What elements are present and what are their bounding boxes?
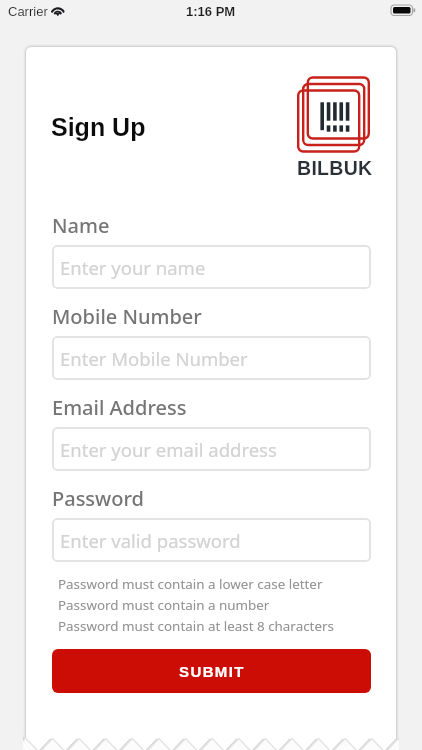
staticText: Password must contain at least 8 charact… bbox=[58, 617, 334, 635]
staticText: Name bbox=[52, 212, 110, 239]
staticText: Password bbox=[52, 485, 144, 512]
staticText: Mobile Number bbox=[52, 303, 202, 330]
button[interactable]: SUBMIT bbox=[52, 649, 371, 693]
staticText: Enter valid password bbox=[60, 528, 241, 553]
staticText: Email Address bbox=[52, 394, 187, 421]
staticText: BILBUK bbox=[297, 157, 373, 179]
staticText: SUBMIT bbox=[179, 663, 245, 680]
other: BILBUK logo bbox=[298, 77, 374, 155]
other: Battery full bbox=[391, 5, 416, 16]
staticText: 1:16 PM bbox=[186, 4, 236, 19]
staticText: Enter your email address bbox=[60, 437, 277, 462]
other: Wi-Fi bbox=[50, 3, 67, 17]
staticText: Carrier bbox=[8, 4, 48, 19]
staticText: Password must contain a number bbox=[58, 596, 270, 614]
staticText: Enter Mobile Number bbox=[60, 346, 248, 371]
button[interactable]: Enter your name bbox=[52, 245, 371, 289]
staticText: Password must contain a lower case lette… bbox=[58, 575, 323, 593]
staticText: Enter your name bbox=[60, 255, 206, 280]
button[interactable]: Enter your email address bbox=[52, 427, 371, 471]
button[interactable]: Enter Mobile Number bbox=[52, 336, 371, 380]
staticText: Sign Up bbox=[51, 113, 146, 141]
button[interactable]: Enter valid password bbox=[52, 518, 371, 562]
